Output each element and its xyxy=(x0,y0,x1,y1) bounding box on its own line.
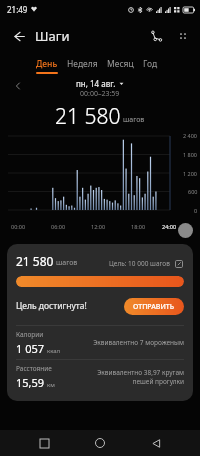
button[interactable]: Год xyxy=(143,57,158,74)
button[interactable]: Изменить цель xyxy=(173,258,184,269)
staticText: Неделя xyxy=(67,58,98,70)
button[interactable]: Назад xyxy=(4,22,32,50)
staticText: 06:00 xyxy=(51,223,66,230)
button[interactable]: Ещё xyxy=(170,23,196,49)
staticText: 18:00 xyxy=(131,223,146,230)
staticText: 21:49 xyxy=(7,4,28,15)
staticText: 24:00 xyxy=(162,223,177,230)
staticText: Цель достигнута! xyxy=(16,300,87,312)
staticText: 2 400 xyxy=(183,132,198,139)
staticText: Шаги xyxy=(35,27,70,45)
staticText: Месяц xyxy=(107,58,134,70)
staticText: Год xyxy=(143,58,158,70)
button[interactable]: Месяц xyxy=(107,57,134,74)
staticText: 00:00 xyxy=(11,223,26,230)
staticText: 21 580 xyxy=(55,102,121,128)
button[interactable]: День xyxy=(36,57,58,74)
button[interactable]: Главный экран xyxy=(88,431,112,455)
staticText: 12:00 xyxy=(91,223,106,230)
staticText: 1 800 xyxy=(183,151,198,158)
staticText: 0 xyxy=(194,207,198,214)
staticText: Калории xyxy=(16,330,44,339)
button[interactable]: Ползунок графика xyxy=(178,223,193,238)
staticText: Расстояние xyxy=(16,364,52,373)
staticText: 21 580 xyxy=(16,253,54,269)
button[interactable]: Маршрут xyxy=(142,23,168,49)
button[interactable]: ОТПРАВИТЬ xyxy=(124,298,184,315)
staticText: км xyxy=(47,381,55,389)
staticText: Эквивалентно 38,97 кругам пешей прогулки xyxy=(78,368,184,386)
staticText: шагов xyxy=(56,258,78,268)
button[interactable]: Предыдущий день xyxy=(10,78,26,94)
staticText: Эквивалентно 7 мороженым xyxy=(78,338,184,347)
staticText: 00:00–23:59 xyxy=(80,89,120,99)
button[interactable]: пн, 14 авг. xyxy=(76,78,124,89)
staticText: ОТПРАВИТЬ xyxy=(133,302,175,312)
button[interactable]: Расстояние xyxy=(16,360,184,393)
staticText: ккал xyxy=(47,347,61,355)
button[interactable]: Недавние приложения xyxy=(32,431,56,455)
staticText: Цель: 10 000 шагов xyxy=(109,259,170,268)
staticText: пн, 14 авг. xyxy=(76,78,116,89)
button[interactable]: Неделя xyxy=(67,57,98,74)
staticText: 1 200 xyxy=(183,170,198,177)
staticText: 600 xyxy=(188,188,198,195)
staticText: 1 057 xyxy=(16,341,45,356)
staticText: 15,59 xyxy=(16,375,45,390)
staticText: шагов xyxy=(123,115,145,125)
button[interactable]: Калории xyxy=(16,326,184,359)
staticText: День xyxy=(36,58,58,70)
button[interactable]: Назад xyxy=(144,431,168,455)
